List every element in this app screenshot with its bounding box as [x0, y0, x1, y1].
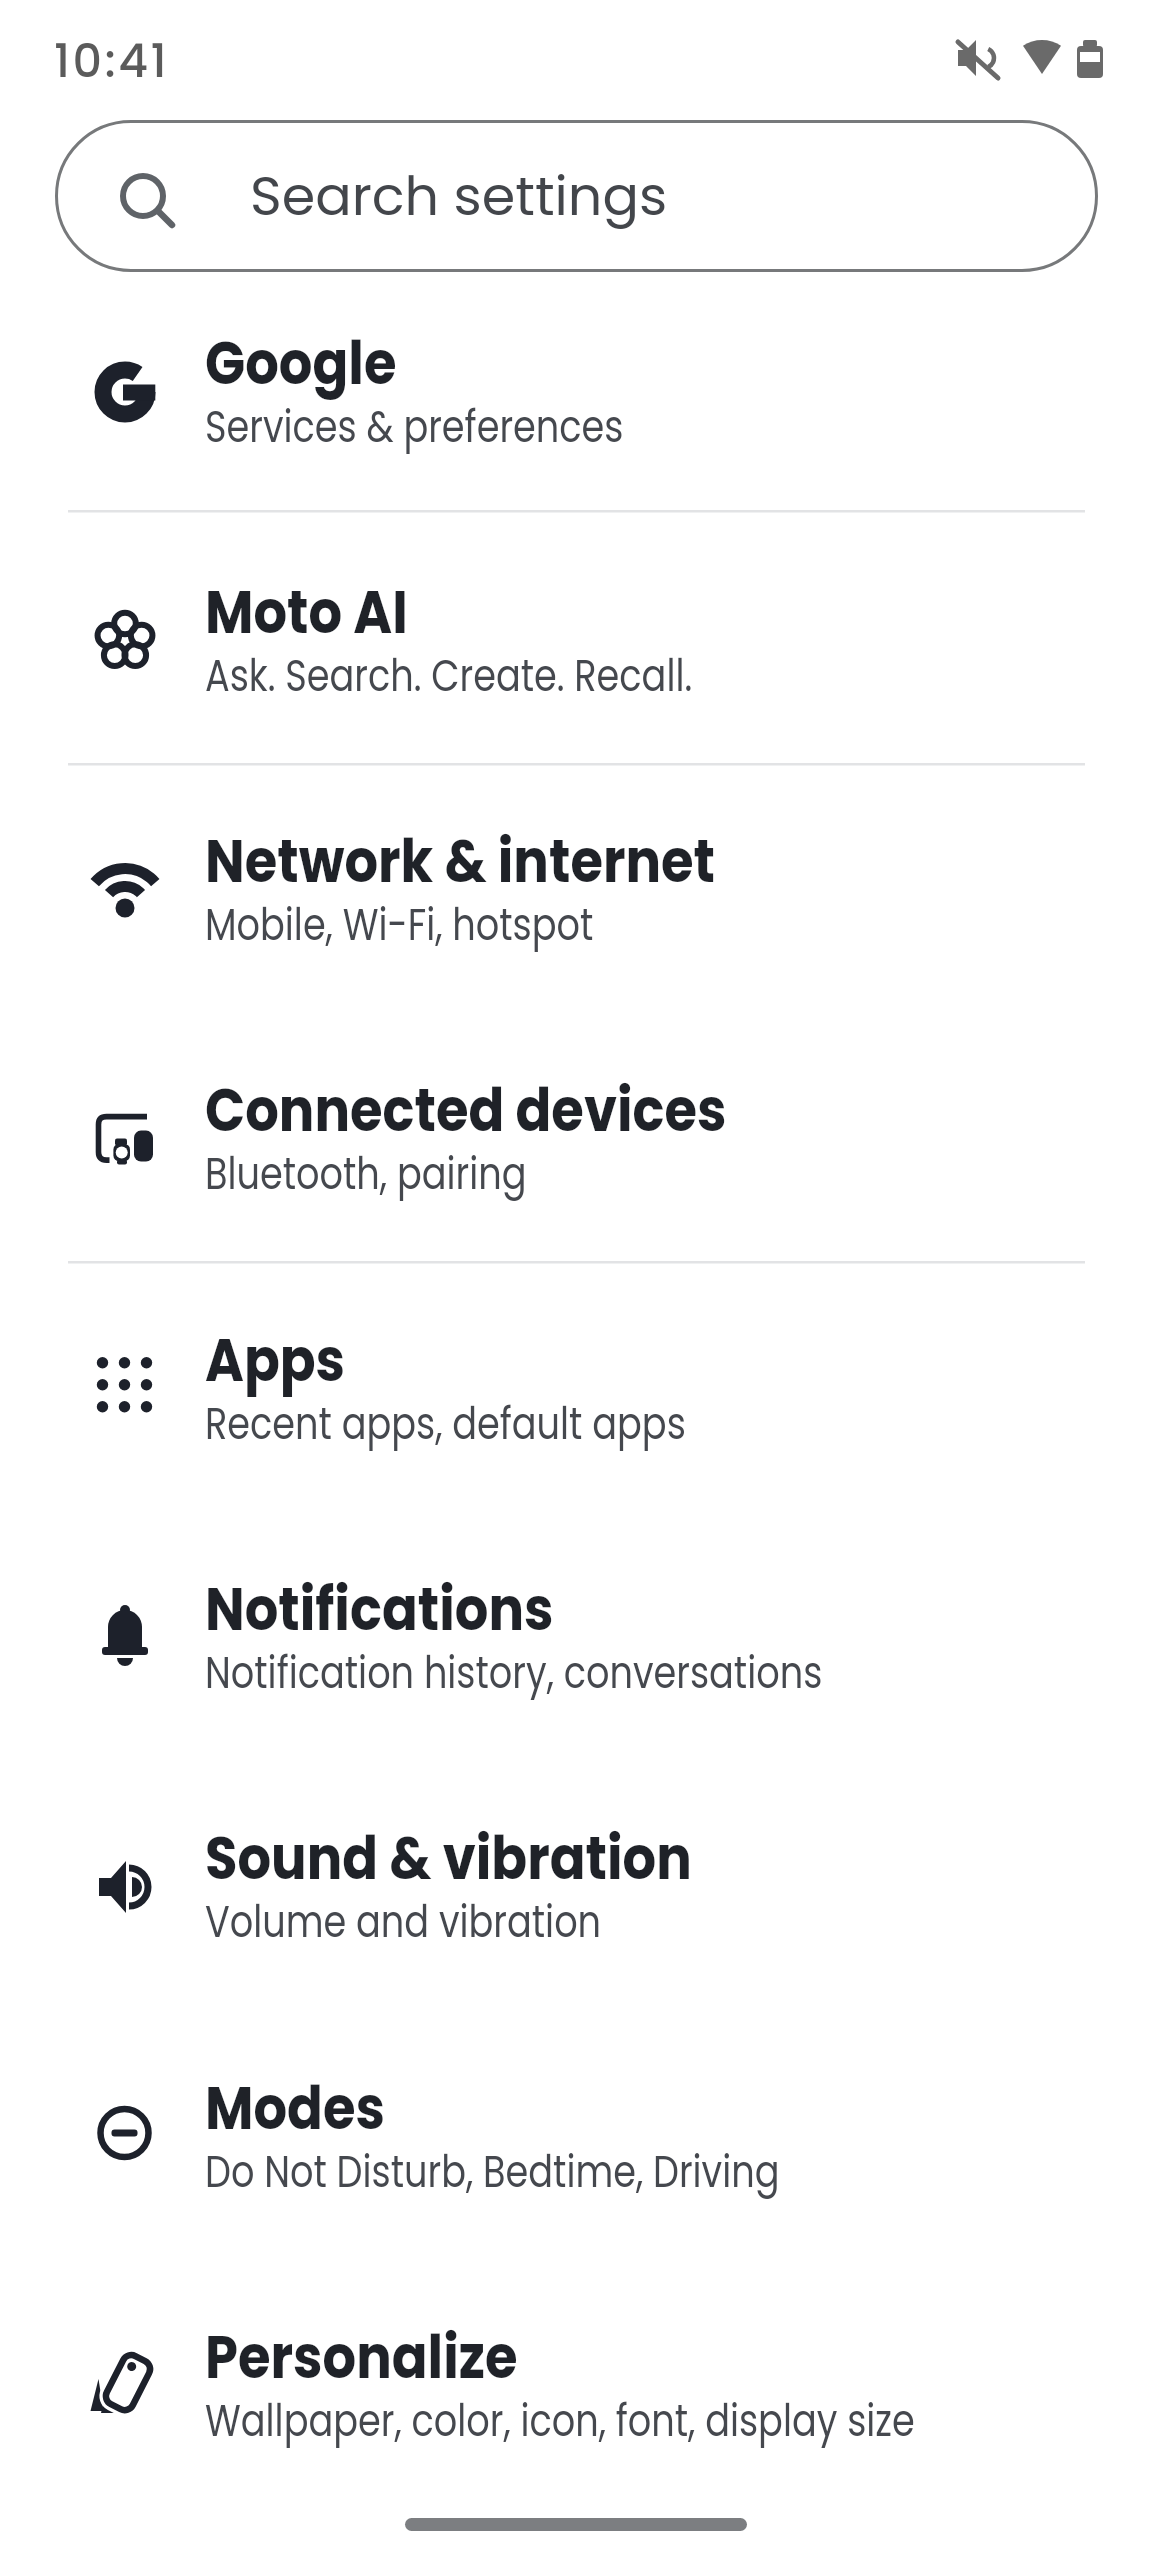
staticText: Moto AI — [205, 570, 408, 654]
button[interactable]: Modes — [0, 2013, 1152, 2261]
staticText: Volume and vibration — [205, 1890, 602, 1953]
staticText: Ask. Search. Create. Recall. — [205, 644, 692, 707]
staticText: Connected devices — [205, 1068, 727, 1152]
staticText: Search settings — [250, 158, 668, 234]
staticText: Modes — [205, 2066, 385, 2150]
button[interactable]: Moto AI — [0, 517, 1152, 765]
staticText: Google — [205, 321, 397, 405]
staticText: Personalize — [205, 2315, 518, 2399]
button[interactable]: Google — [0, 268, 1152, 516]
staticText: Bluetooth, pairing — [205, 1142, 527, 1205]
staticText: Do Not Disturb, Bedtime, Driving — [205, 2140, 780, 2203]
button[interactable]: Apps — [0, 1265, 1152, 1513]
button[interactable]: Search settings — [55, 120, 1098, 272]
staticText: Network & internet — [205, 819, 715, 903]
staticText: 10:41 — [54, 29, 170, 93]
staticText: Mobile, Wi-Fi, hotspot — [205, 893, 594, 956]
button[interactable]: Sound & vibration — [0, 1763, 1152, 2011]
staticText: Notification history, conversations — [205, 1641, 823, 1704]
button[interactable]: Notifications — [0, 1514, 1152, 1762]
button[interactable]: Personalize — [0, 2262, 1152, 2510]
staticText: Recent apps, default apps — [205, 1392, 686, 1455]
staticText: Apps — [205, 1318, 346, 1402]
staticText: Sound & vibration — [205, 1816, 692, 1900]
staticText: Services & preferences — [205, 395, 624, 458]
button[interactable]: Network & internet — [0, 766, 1152, 1014]
staticText: Notifications — [205, 1567, 553, 1651]
staticText: Wallpaper, color, icon, font, display si… — [205, 2389, 915, 2452]
button[interactable]: Connected devices — [0, 1015, 1152, 1263]
